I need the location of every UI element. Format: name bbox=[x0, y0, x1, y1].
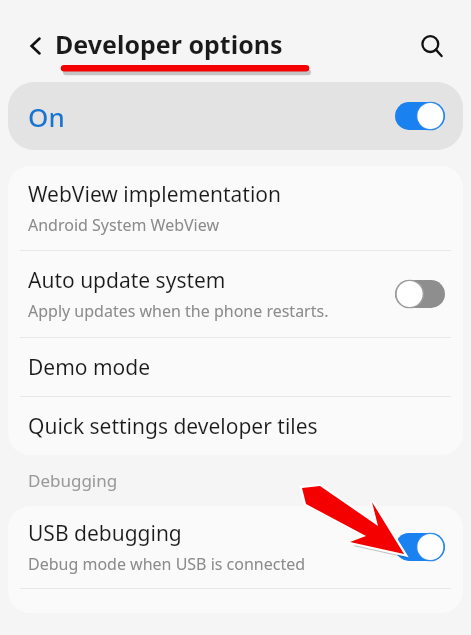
staticText: Android System WebView bbox=[28, 214, 220, 236]
button[interactable]: Navigate up bbox=[14, 24, 58, 68]
button[interactable]: Search bbox=[408, 22, 456, 70]
button[interactable]: WebView implementation bbox=[8, 166, 463, 250]
staticText: Quick settings developer tiles bbox=[28, 412, 318, 441]
button[interactable]: Toggle on bbox=[395, 101, 445, 131]
button[interactable]: Demo mode bbox=[8, 338, 463, 396]
staticText: Developer options bbox=[55, 27, 283, 61]
staticText: Demo mode bbox=[28, 353, 151, 382]
staticText: Debugging bbox=[28, 469, 118, 492]
staticText: Apply updates when the phone restarts. bbox=[28, 300, 329, 322]
button[interactable]: Toggle on bbox=[395, 532, 445, 562]
button[interactable]: Auto update system bbox=[8, 251, 463, 337]
button[interactable]: USB debugging bbox=[8, 506, 463, 588]
staticText: USB debugging bbox=[28, 519, 182, 548]
staticText: On bbox=[28, 99, 65, 134]
button[interactable]: Quick settings developer tiles bbox=[8, 397, 463, 455]
button[interactable]: On bbox=[8, 82, 463, 150]
staticText: Auto update system bbox=[28, 266, 226, 295]
staticText: Debug mode when USB is connected bbox=[28, 553, 306, 575]
button[interactable]: Toggle off bbox=[395, 279, 445, 309]
staticText: WebView implementation bbox=[28, 180, 282, 209]
